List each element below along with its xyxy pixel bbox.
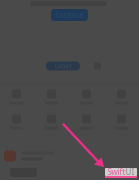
button[interactable]: Label — [46, 61, 80, 70]
staticText: Swift — [107, 167, 125, 177]
button[interactable] — [4, 149, 70, 162]
button[interactable]: Shortcut — [35, 112, 67, 132]
button[interactable]: Continue — [51, 9, 88, 21]
staticText: Continue — [55, 11, 83, 19]
staticText: Label — [54, 62, 71, 70]
staticText: UI — [125, 167, 134, 177]
button[interactable]: Shortcut — [70, 112, 102, 132]
